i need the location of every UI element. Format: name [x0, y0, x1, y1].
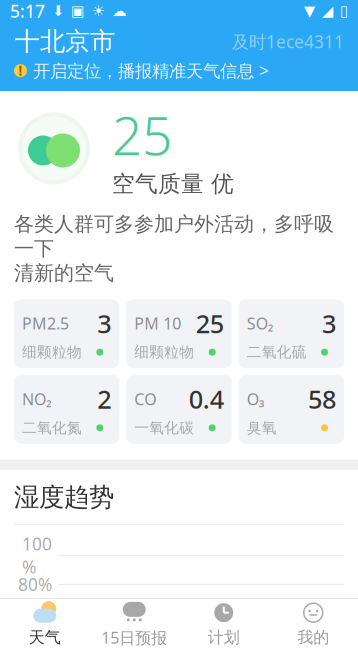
button[interactable]: 15日预报: [89, 599, 179, 649]
staticText: 3: [322, 306, 336, 340]
button[interactable]: 我的: [268, 599, 358, 649]
staticText: 计划: [208, 628, 240, 647]
staticText: 天气: [29, 628, 61, 647]
button[interactable]: 计划: [179, 599, 268, 649]
staticText: 空气质量 优: [112, 170, 234, 198]
staticText: 各类人群可多参加户外活动，多呼吸一下 清新的空气: [14, 212, 334, 285]
staticText: 二氧化硫: [247, 343, 307, 361]
staticText: 湿度趋势: [14, 482, 114, 513]
staticText: 我的: [297, 628, 329, 647]
staticText: 二氧化氮: [22, 419, 82, 437]
staticText: NO₂: [22, 388, 52, 410]
staticText: 及时1ece4311: [232, 30, 344, 53]
staticText: ▯: [340, 3, 348, 19]
button[interactable]: 天气: [0, 599, 89, 649]
staticText: 一氧化碳: [134, 419, 194, 437]
staticText: 5:17: [10, 0, 45, 22]
staticText: 80%: [18, 573, 52, 596]
staticText: ▼: [304, 3, 315, 19]
staticText: ▣: [71, 3, 85, 19]
staticText: CO: [134, 388, 156, 410]
button[interactable]: 及时1ece4311: [232, 30, 344, 53]
staticText: !: [18, 62, 22, 79]
staticText: ◢: [322, 3, 333, 19]
staticText: 十: [14, 26, 39, 57]
staticText: PM2.5: [22, 313, 69, 334]
staticText: SO₂: [247, 313, 274, 334]
staticText: 100%: [22, 532, 52, 578]
staticText: 15日预报: [101, 627, 167, 648]
staticText: 细颗粒物: [134, 343, 194, 361]
staticText: 20.: [54, 634, 86, 649]
staticText: 0.4: [189, 382, 224, 416]
staticText: 开启定位，播报精准天气信息 >: [33, 59, 269, 82]
button[interactable]: Add city: [14, 30, 40, 54]
staticText: ☀: [92, 3, 105, 19]
staticText: 北京市: [40, 26, 115, 57]
staticText: 58: [308, 382, 336, 416]
button[interactable]: !: [14, 59, 344, 82]
staticText: PM 10: [134, 313, 181, 334]
staticText: 60%: [18, 602, 52, 625]
staticText: 臭氧: [247, 419, 277, 437]
staticText: ☁: [112, 3, 127, 19]
staticText: O₃: [247, 388, 265, 410]
staticText: ⬇: [52, 3, 64, 19]
staticText: 细颗粒物: [22, 343, 82, 361]
staticText: 25: [112, 99, 172, 170]
staticText: 3: [97, 306, 111, 340]
staticText: 2: [97, 382, 111, 416]
staticText: 25: [196, 306, 224, 340]
